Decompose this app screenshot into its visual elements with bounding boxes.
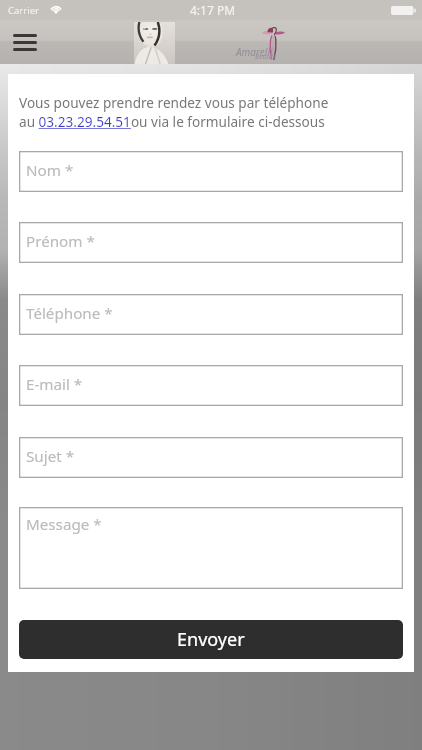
button[interactable]: Sujet * bbox=[19, 437, 403, 478]
button[interactable]: Prénom * bbox=[19, 222, 403, 263]
button[interactable]: Message * bbox=[19, 507, 403, 589]
staticText: Carrier bbox=[8, 4, 39, 17]
staticText: Beauté bbox=[255, 52, 277, 62]
staticText: Prénom * bbox=[26, 231, 95, 252]
button[interactable]: Téléphone * bbox=[19, 294, 403, 335]
staticText: Nom * bbox=[26, 160, 74, 181]
staticText: Vous pouvez prendre rendez vous par télé… bbox=[19, 93, 329, 112]
staticText: au 03.23.29.54.51ou via le formulaire ci… bbox=[19, 112, 325, 131]
button[interactable]: Envoyer bbox=[19, 620, 403, 659]
button[interactable]: Open navigation menu bbox=[3, 20, 47, 64]
staticText: Message * bbox=[26, 514, 102, 535]
staticText: Envoyer bbox=[177, 627, 245, 652]
staticText: Sujet * bbox=[26, 446, 75, 467]
button[interactable]: Nom * bbox=[19, 151, 403, 192]
staticText: Téléphone * bbox=[26, 303, 113, 324]
staticText: Amarelli bbox=[236, 45, 273, 59]
staticText: 4:17 PM bbox=[190, 2, 236, 18]
staticText: E-mail * bbox=[26, 374, 83, 395]
button[interactable]: E-mail * bbox=[19, 365, 403, 406]
